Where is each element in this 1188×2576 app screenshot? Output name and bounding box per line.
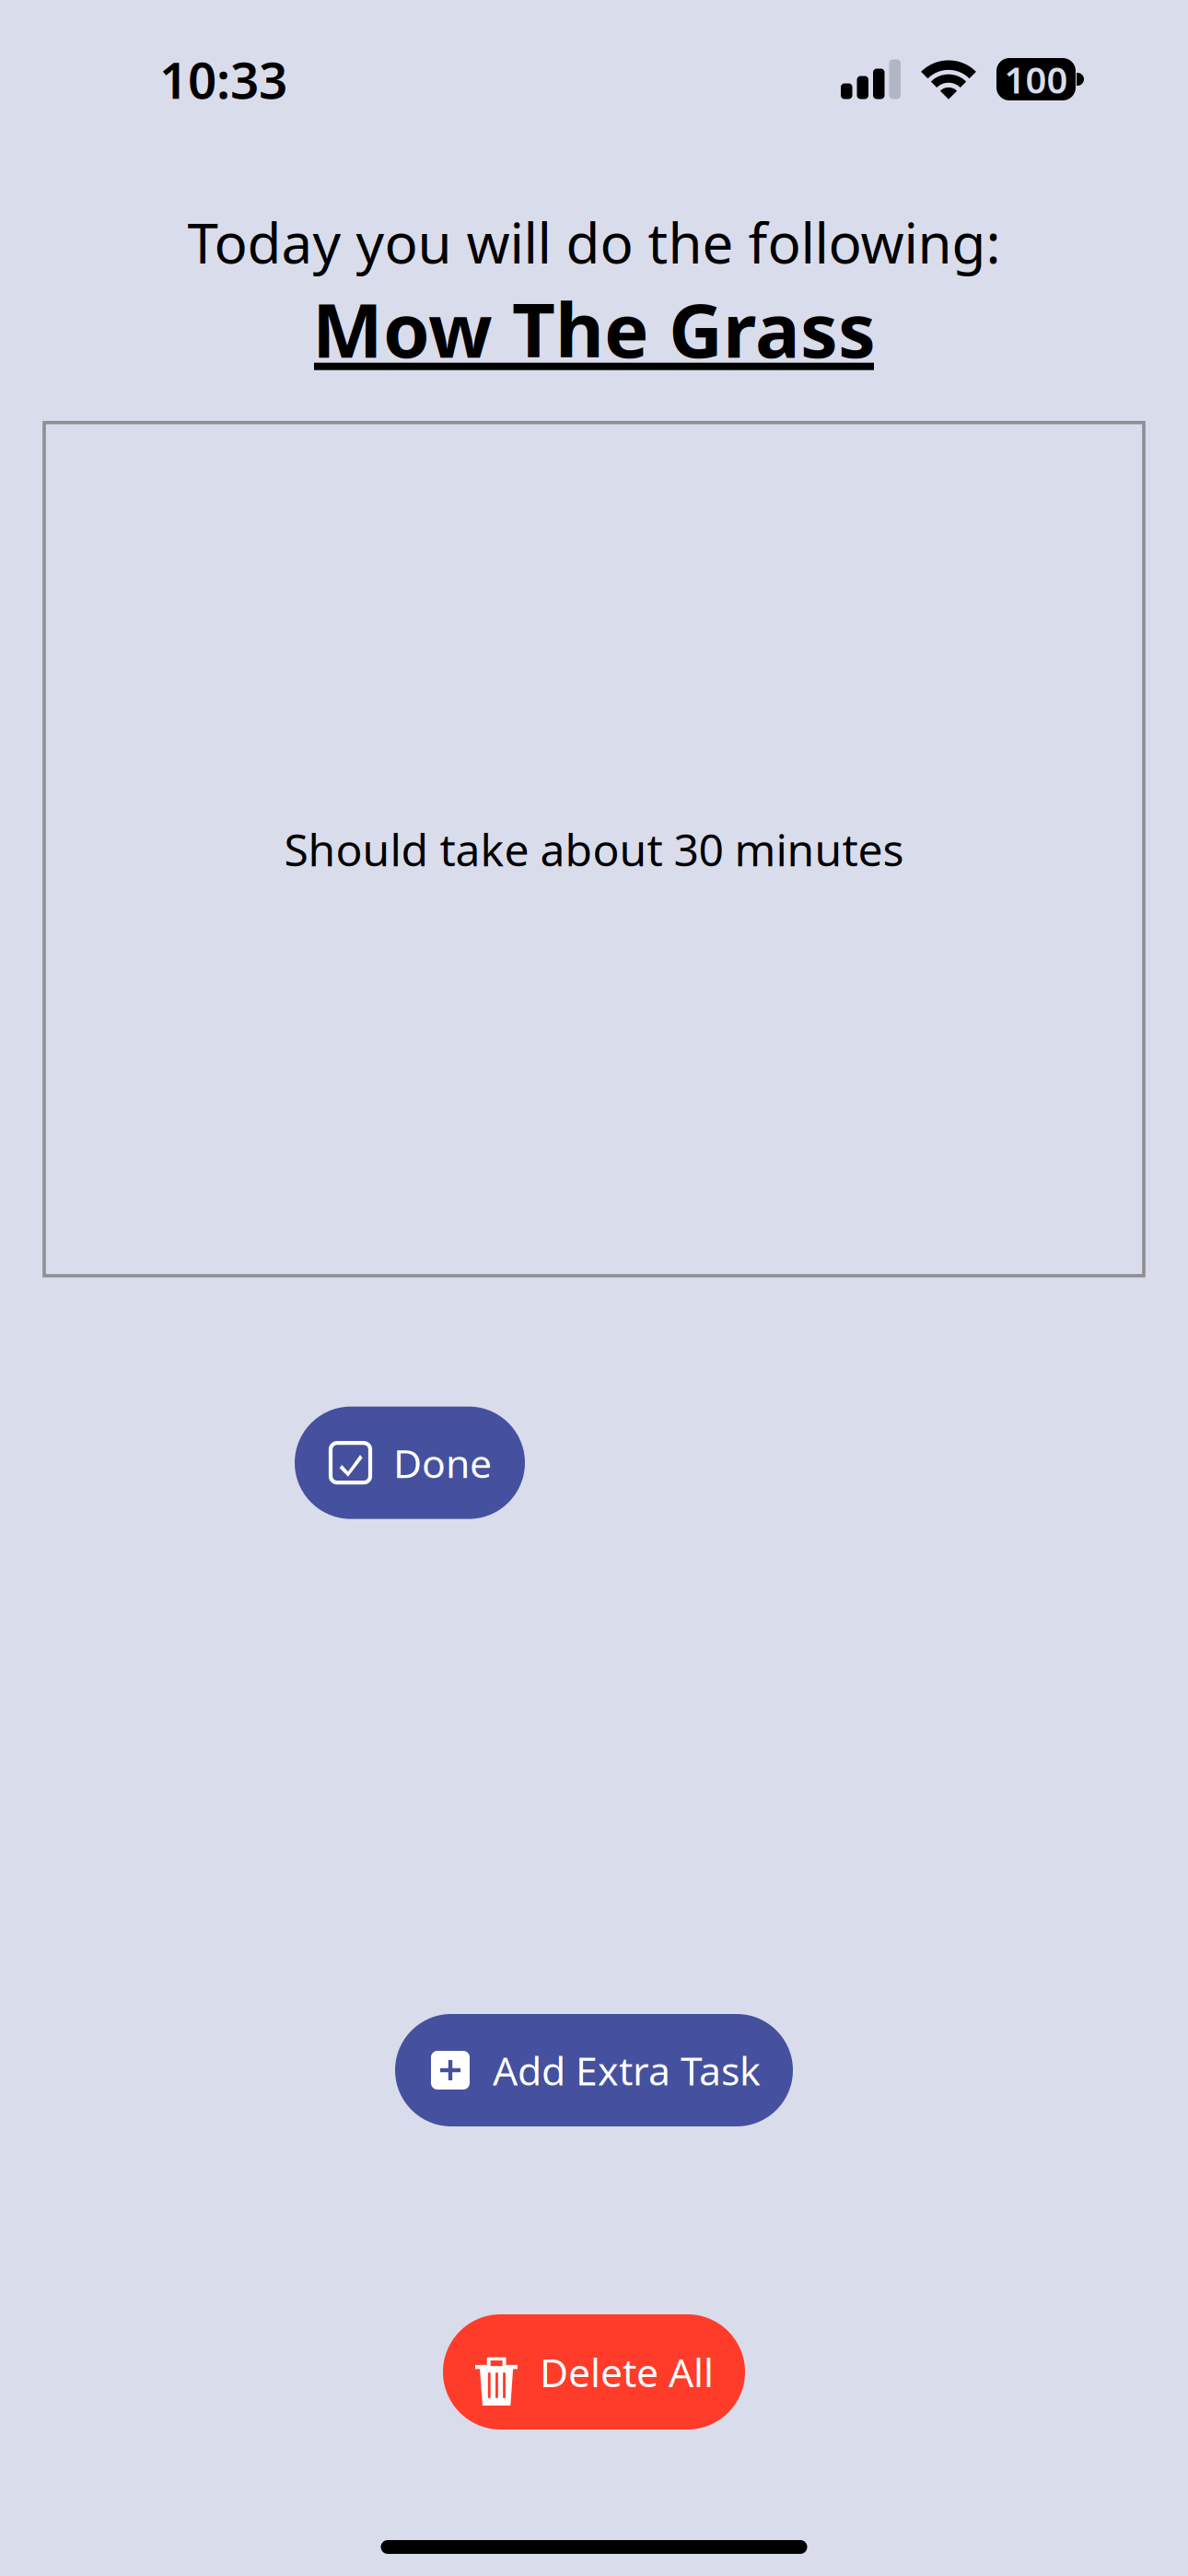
staticText: Add Extra Task	[493, 2044, 761, 2096]
staticText: Delete All	[540, 2346, 714, 2398]
staticText: 100	[1004, 55, 1068, 104]
staticText: Should take about 30 minutes	[284, 820, 904, 878]
staticText: Done	[393, 1437, 492, 1489]
button[interactable]: Done	[295, 1407, 525, 1519]
staticText: Today you will do the following:	[187, 205, 1001, 279]
staticText: 10:33	[159, 46, 287, 113]
staticText: Mow The Grass	[312, 279, 876, 378]
button[interactable]: Delete All	[443, 2314, 745, 2430]
button[interactable]: Add Extra Task	[395, 2014, 793, 2126]
